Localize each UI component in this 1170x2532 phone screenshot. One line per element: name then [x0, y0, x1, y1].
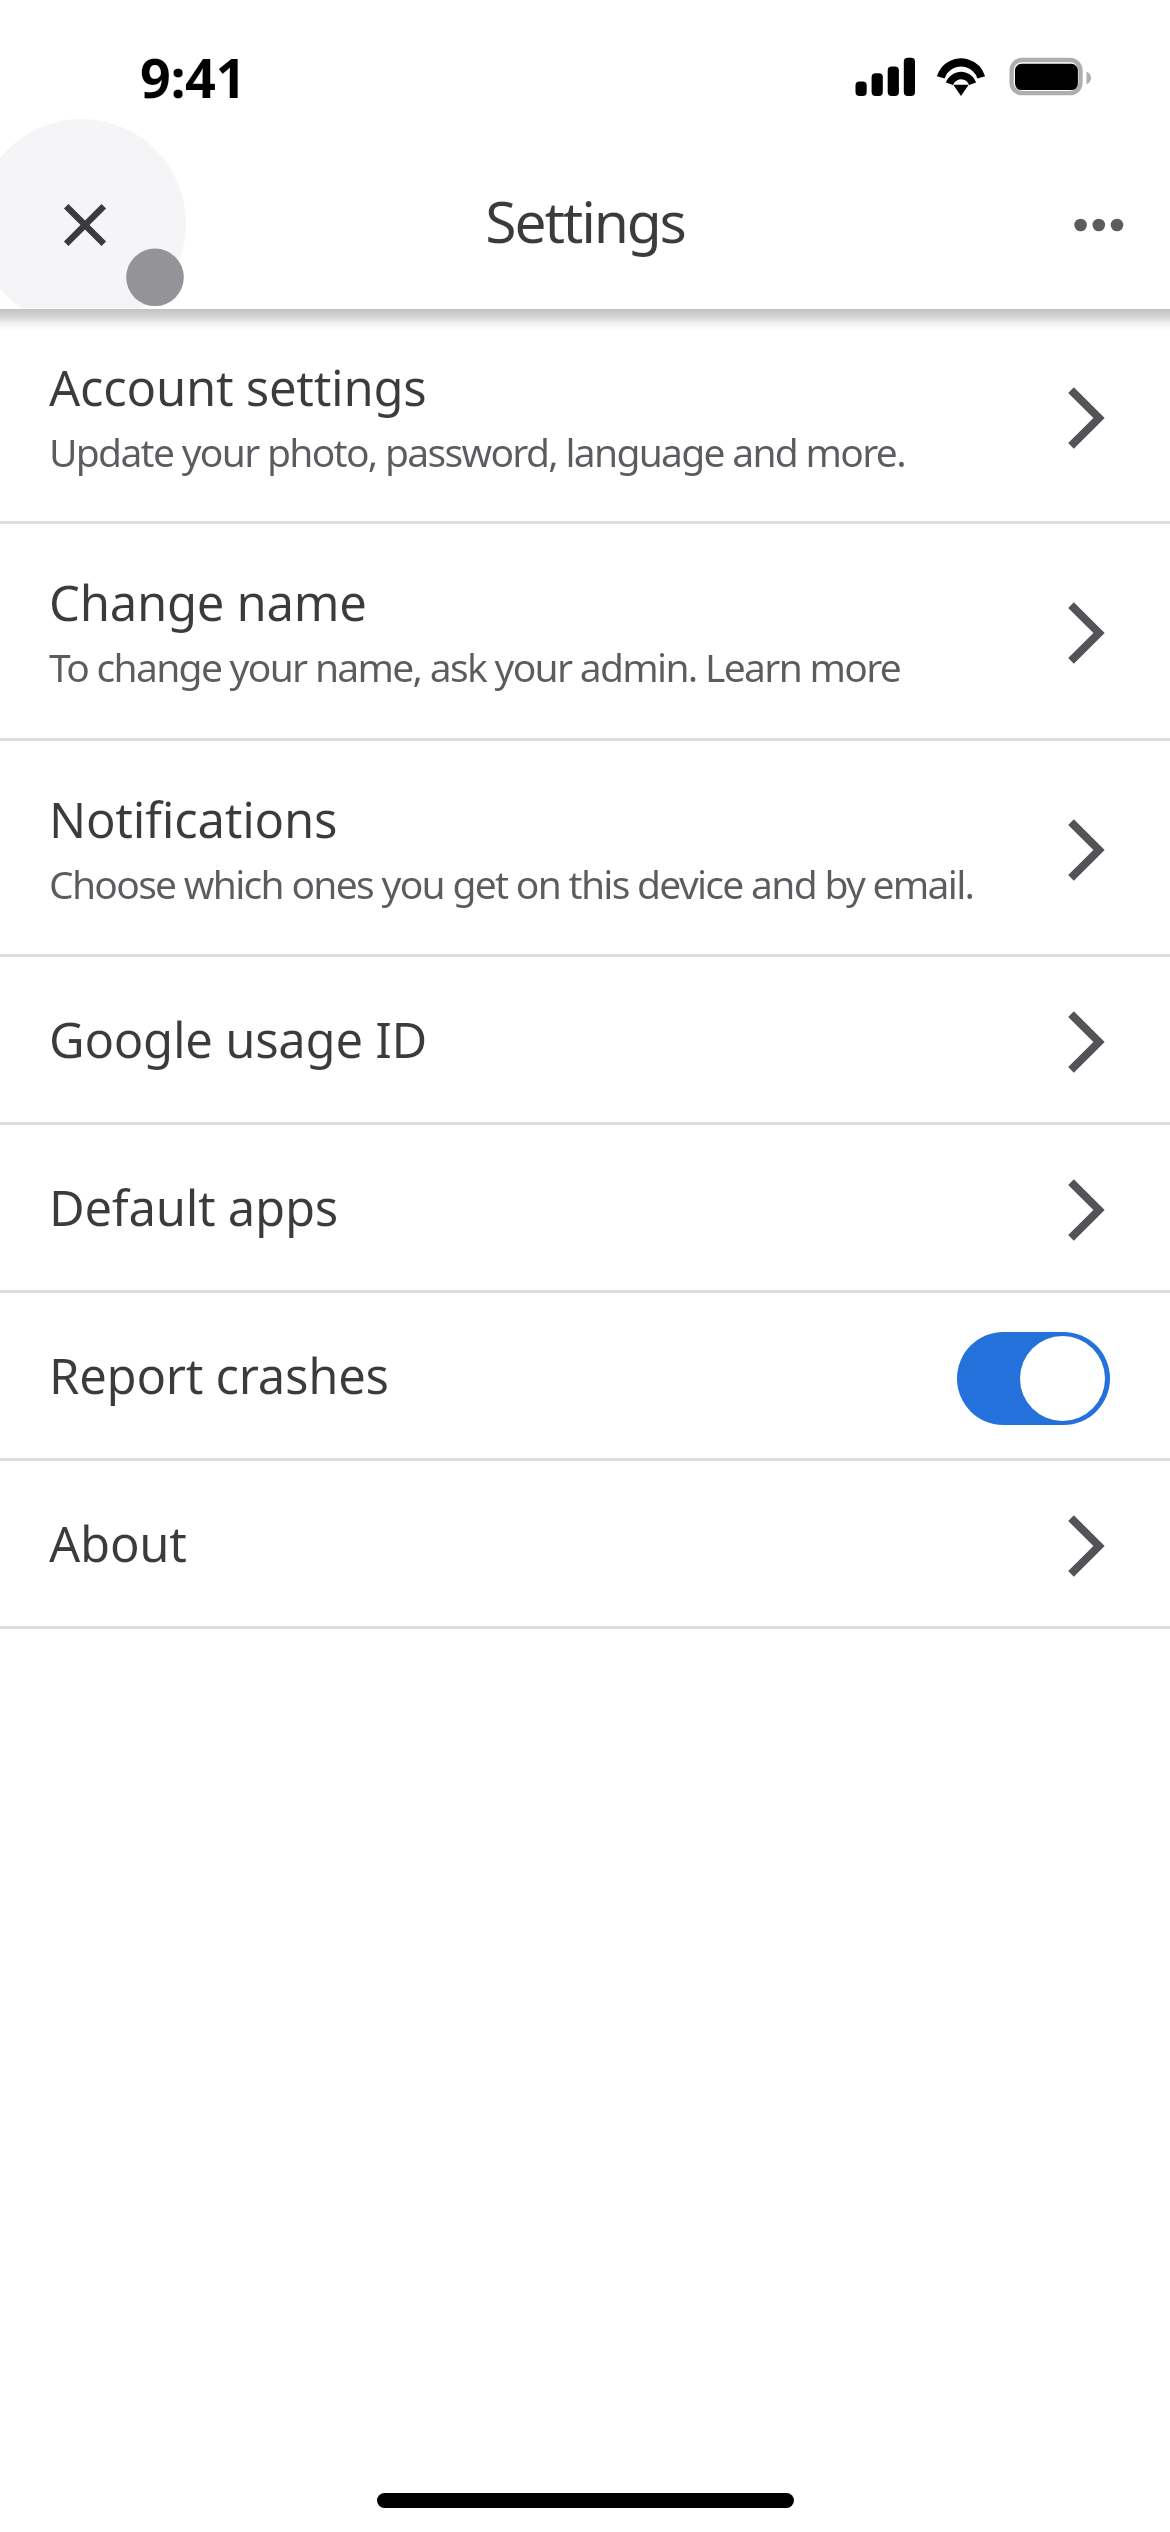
button[interactable]: Close [1, 141, 169, 300]
staticText: Change name [49, 569, 367, 636]
staticText: Update your photo, password, language an… [49, 425, 905, 478]
staticText: Report crashes [49, 1342, 957, 1409]
button[interactable]: About [0, 1461, 1170, 1626]
staticText: Choose which ones you get on this device… [49, 857, 974, 910]
button[interactable]: Report crashes [0, 1293, 1170, 1458]
button[interactable]: Google usage ID [0, 957, 1170, 1122]
staticText: To change your name, ask your admin. Lea… [49, 640, 901, 693]
button[interactable]: More options [1040, 160, 1170, 290]
button[interactable]: Change name [0, 524, 1170, 738]
staticText: About [49, 1510, 187, 1577]
staticText: Settings [485, 182, 685, 260]
staticText: Notifications [49, 786, 338, 853]
button[interactable]: Notifications [0, 741, 1170, 954]
button[interactable]: Default apps [0, 1125, 1170, 1290]
staticText: Google usage ID [49, 1006, 428, 1073]
staticText: Default apps [49, 1174, 338, 1241]
button[interactable]: Report crashes toggle, on [957, 1332, 1110, 1425]
button[interactable]: Account settings [0, 310, 1170, 521]
staticText: 9:41 [140, 40, 246, 114]
staticText: Account settings [49, 354, 427, 421]
